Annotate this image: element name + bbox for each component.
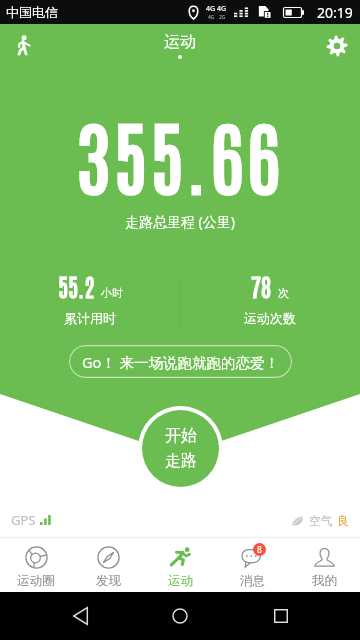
staticText: GPS — [11, 511, 36, 529]
button[interactable]: 运动 — [144, 538, 216, 592]
staticText: 运动 — [168, 573, 193, 589]
button[interactable]: Settings — [314, 24, 360, 68]
staticText: 空气 — [309, 513, 333, 528]
staticText: 2G — [219, 14, 226, 21]
button[interactable]: 空气 — [290, 513, 349, 528]
button[interactable]: 开始 — [142, 410, 219, 487]
button[interactable]: Recent apps — [260, 595, 302, 637]
staticText: 8 — [257, 544, 262, 556]
button[interactable]: Back — [59, 595, 101, 637]
staticText: 4G — [206, 4, 216, 14]
button[interactable]: 发现 — [72, 538, 144, 592]
button[interactable]: 8 — [216, 538, 288, 592]
staticText: 78 — [251, 270, 272, 301]
staticText: 良 — [337, 513, 349, 528]
staticText: 中国电信 — [6, 4, 58, 20]
staticText: 55.2 — [58, 270, 95, 301]
button[interactable]: 运动圈 — [0, 538, 72, 592]
staticText: 小时 — [101, 286, 123, 300]
staticText: 次 — [278, 286, 289, 300]
staticText: 运动 — [164, 32, 196, 52]
button[interactable]: Switch activity mode — [0, 24, 46, 68]
staticText: Go！ 来一场说跑就跑的恋爱！ — [82, 352, 280, 372]
staticText: 4G — [217, 4, 227, 14]
staticText: 消息 — [240, 573, 265, 589]
staticText: 运动圈 — [17, 573, 55, 589]
button[interactable]: 我的 — [288, 538, 360, 592]
button[interactable]: Home — [159, 595, 201, 637]
staticText: 发现 — [96, 573, 121, 589]
button[interactable]: GPS — [11, 511, 51, 529]
staticText: 走路总里程 (公里) — [0, 212, 360, 231]
staticText: 累计用时 — [64, 310, 116, 326]
staticText: 走路 — [165, 451, 197, 471]
staticText: 355.66 — [0, 102, 360, 206]
staticText: 运动次数 — [244, 310, 296, 326]
staticText: 4G — [208, 14, 215, 21]
staticText: 我的 — [312, 573, 337, 589]
staticText: 开始 — [165, 426, 197, 446]
button[interactable]: Go！ 来一场说跑就跑的恋爱！ — [69, 345, 292, 378]
staticText: 20:19 — [317, 3, 353, 22]
